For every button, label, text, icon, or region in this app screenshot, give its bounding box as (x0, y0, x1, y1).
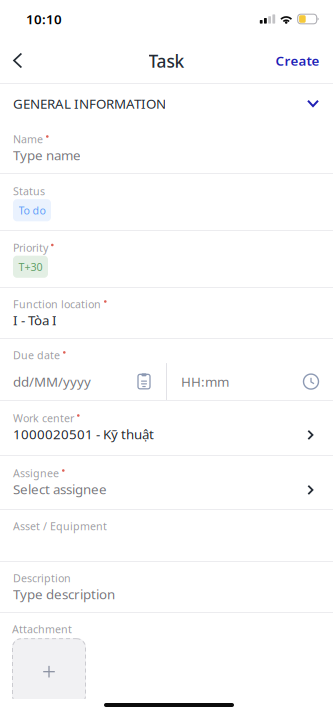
staticText: Type description (13, 585, 115, 603)
staticText: HH:mm (181, 373, 229, 390)
staticText: Type name (13, 146, 81, 164)
button[interactable]: HH:mm (167, 368, 333, 396)
button[interactable]: Function location (0, 288, 333, 338)
staticText: Function location (13, 297, 101, 311)
staticText: T+30 (18, 260, 42, 274)
staticText: Attachment (12, 622, 72, 636)
staticText: dd/MM/yyyy (13, 373, 91, 390)
staticText: Due date (13, 348, 60, 362)
staticText: Select assignee (13, 480, 107, 498)
button[interactable]: Name (0, 123, 333, 173)
staticText: GENERAL INFORMATION (13, 95, 166, 112)
button[interactable]: Add attachment (12, 638, 86, 705)
button[interactable]: Priority (0, 231, 333, 287)
staticText: Assignee (13, 466, 59, 480)
button[interactable]: Create (259, 39, 333, 82)
staticText: I - Tòa I (13, 311, 57, 329)
staticText: Name (13, 132, 43, 146)
button[interactable]: Assignee (0, 456, 333, 509)
staticText: 1000020501 - Kỹ thuật (13, 425, 154, 443)
button[interactable]: GENERAL INFORMATION (0, 84, 333, 123)
staticText: Description (13, 571, 71, 585)
staticText: Task (148, 49, 184, 72)
staticText: 10:10 (26, 10, 62, 28)
button[interactable]: Status (0, 174, 333, 230)
button[interactable]: Asset / Equipment (0, 510, 333, 561)
staticText: To do (18, 203, 45, 217)
button[interactable]: Work center (0, 401, 333, 455)
staticText: Priority (13, 240, 48, 255)
staticText: Create (275, 52, 319, 69)
button[interactable]: Description (0, 562, 333, 612)
staticText: Status (13, 184, 45, 198)
button[interactable]: dd/MM/yyyy (0, 368, 166, 396)
staticText: Asset / Equipment (13, 519, 107, 533)
button[interactable]: Back (0, 39, 38, 81)
staticText: Work center (13, 411, 74, 425)
